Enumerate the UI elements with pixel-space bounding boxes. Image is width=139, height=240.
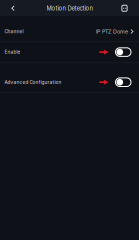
staticText: Enable bbox=[5, 49, 21, 55]
button[interactable]: Snapshot bbox=[117, 0, 131, 16]
button[interactable]: Advanced Configuration bbox=[108, 78, 131, 86]
staticText: Channel bbox=[5, 29, 24, 34]
staticText: Advanced Configuration bbox=[5, 79, 62, 85]
staticText: Motion Detection bbox=[46, 5, 92, 12]
button[interactable]: Channel bbox=[0, 21, 139, 41]
button[interactable]: Back bbox=[3, 0, 23, 16]
button[interactable]: Enable bbox=[108, 48, 131, 56]
staticText: IP PTZ Dome bbox=[96, 28, 128, 35]
